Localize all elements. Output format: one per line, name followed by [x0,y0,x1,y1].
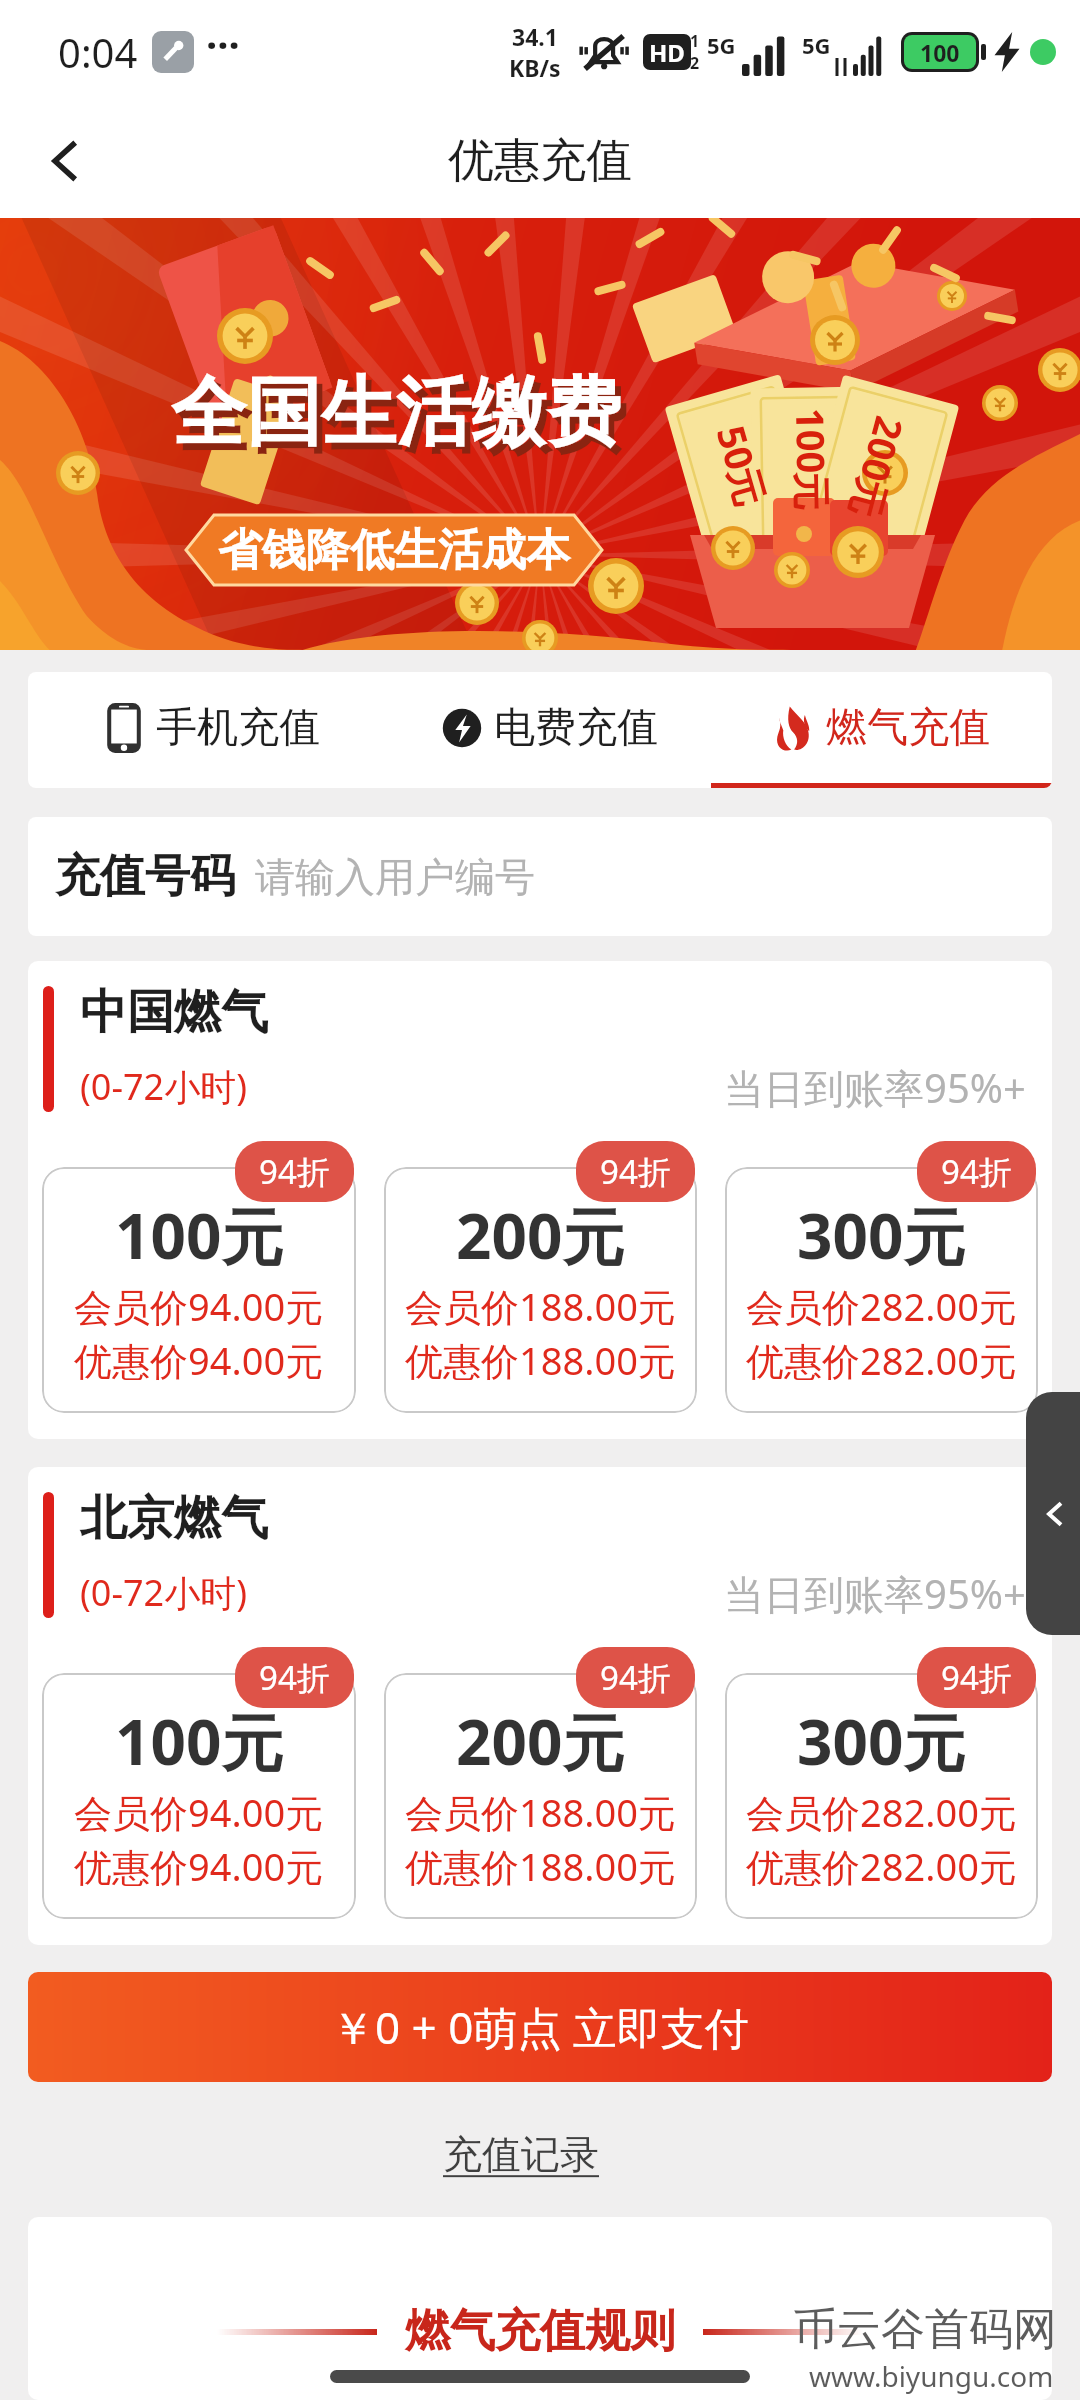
staticText: 200元 [456,1699,625,1784]
staticText: 100元 [115,1193,284,1278]
button[interactable]: 电费充值 [370,672,711,788]
button[interactable]: 燃气充值 [711,672,1052,788]
staticText: KB/s [509,52,561,83]
button[interactable]: 100元 [42,1673,356,1919]
staticText: 省钱降低生活成本 [218,523,570,578]
staticText: 币云谷首码网 [793,2302,1057,2357]
staticText: 优惠价282.00元 [746,1840,1017,1892]
staticText: 100元 [785,408,839,512]
staticText: 5G [802,30,831,60]
button[interactable]: 手机充值 [28,672,370,788]
button[interactable]: Back [20,115,112,207]
staticText: 优惠价282.00元 [746,1334,1017,1386]
staticText: 1 [690,30,700,52]
button[interactable]: 100元 [42,1167,356,1413]
staticText: 会员价282.00元 [746,1786,1017,1838]
staticText: 中国燃气 [80,983,268,1042]
staticText: 94折 [600,1149,671,1194]
staticText: 94折 [259,1149,330,1194]
staticText: 充值号码 [55,848,235,905]
staticText: HD [649,36,685,69]
staticText: 充值记录 [443,2130,599,2179]
staticText: 2 [690,52,700,74]
staticText: 94折 [259,1655,330,1700]
button[interactable]: 200元 [384,1673,697,1919]
button[interactable]: 充值记录 [423,2122,619,2187]
staticText: 优惠价94.00元 [74,1840,324,1892]
staticText: 请输入用户编号 [255,852,535,902]
staticText: 当日到账率95%+ [724,1566,1026,1621]
staticText: 34.1 [512,21,558,52]
staticText: 会员价94.00元 [74,1280,324,1332]
staticText: 5G [707,30,736,60]
staticText: 全国生活缴费 [171,366,621,460]
staticText: (0-72小时) [80,1568,247,1617]
staticText: 会员价188.00元 [405,1786,676,1838]
staticText: 会员价282.00元 [746,1280,1017,1332]
staticText: 94折 [600,1655,671,1700]
staticText: 手机充值 [156,702,320,754]
staticText: ￥0 + 0萌点 立即支付 [331,1997,749,2057]
staticText: www.biyungu.com [809,2357,1054,2395]
button[interactable]: Expand panel [1026,1392,1080,1635]
staticText: 电费充值 [494,702,658,754]
button[interactable]: 300元 [725,1673,1038,1919]
staticText: 94折 [941,1655,1012,1700]
staticText: 优惠充值 [448,132,632,190]
staticText: 北京燃气 [80,1489,268,1548]
staticText: 200元 [456,1193,625,1278]
staticText: 94折 [941,1149,1012,1194]
staticText: 0:04 [58,25,138,79]
staticText: (0-72小时) [80,1062,247,1111]
button[interactable]: 300元 [725,1167,1038,1413]
button[interactable]: ￥0 + 0萌点 立即支付 [28,1972,1052,2082]
staticText: 100元 [115,1699,284,1784]
staticText: 200元 [839,411,916,525]
staticText: 燃气充值 [826,702,990,754]
staticText: 燃气充值规则 [405,2303,675,2360]
staticText: 会员价94.00元 [74,1786,324,1838]
staticText: 50元 [706,419,778,513]
button[interactable]: 充值号码 [28,817,1052,936]
staticText: 全国生活缴费 [177,373,627,467]
staticText: 300元 [797,1193,966,1278]
staticText: 优惠价188.00元 [405,1840,676,1892]
staticText: 优惠价188.00元 [405,1334,676,1386]
staticText: 300元 [797,1699,966,1784]
staticText: 优惠价94.00元 [74,1334,324,1386]
button[interactable]: 200元 [384,1167,697,1413]
staticText: 100 [920,37,960,68]
staticText: 会员价188.00元 [405,1280,676,1332]
staticText: ··· [206,17,240,71]
staticText: 当日到账率95%+ [724,1060,1026,1115]
